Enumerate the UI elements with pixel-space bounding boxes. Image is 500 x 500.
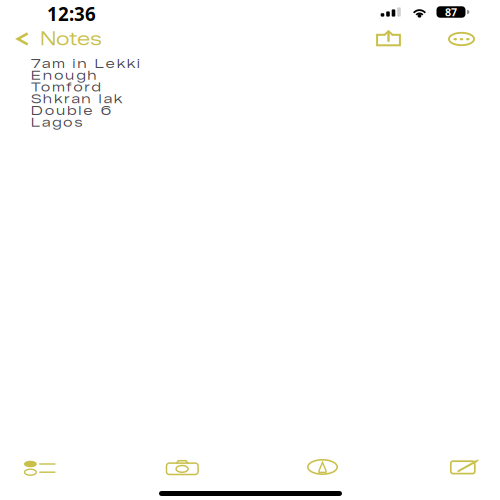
staticText: 7am in Lekki xyxy=(31,56,140,71)
staticText: Tomford xyxy=(31,79,101,95)
staticText: Shkran lak xyxy=(31,91,122,106)
button[interactable]: New note xyxy=(441,450,489,484)
button[interactable]: Checklist xyxy=(15,451,65,485)
button[interactable]: Notes xyxy=(7,21,107,57)
button[interactable]: Camera xyxy=(156,450,207,484)
staticText: 12:36 xyxy=(47,1,96,26)
button[interactable]: More options xyxy=(440,24,483,54)
staticText: Notes xyxy=(40,28,101,50)
staticText: Enough xyxy=(31,68,96,83)
staticText: 87 xyxy=(445,5,457,19)
staticText: Lagos xyxy=(31,115,82,130)
button[interactable]: Share xyxy=(368,22,409,54)
button[interactable]: Markup xyxy=(298,450,347,484)
staticText: Double 6 xyxy=(31,103,111,118)
